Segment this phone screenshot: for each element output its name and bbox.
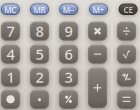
staticText: 1 <box>6 67 14 87</box>
staticText: 9 <box>64 21 72 41</box>
button[interactable]: 6 <box>59 45 78 64</box>
button[interactable]: Decimal point <box>30 90 49 109</box>
staticText: 2 <box>35 67 43 87</box>
button[interactable]: Equals <box>117 90 136 109</box>
button[interactable]: 5 <box>30 45 49 64</box>
staticText: 6 <box>64 44 72 64</box>
button[interactable]: 4 <box>1 45 20 64</box>
staticText: MC <box>4 5 16 15</box>
staticText: CE <box>124 5 133 15</box>
button[interactable]: CE <box>119 4 138 15</box>
button[interactable]: Plus <box>88 68 107 108</box>
button[interactable]: M+ <box>89 4 108 15</box>
button[interactable]: MR <box>30 4 49 15</box>
button[interactable]: 3 <box>59 68 78 87</box>
button[interactable]: Divide <box>117 22 136 41</box>
staticText: M− <box>63 5 75 15</box>
button[interactable]: 1 <box>1 68 20 87</box>
button[interactable]: M− <box>59 4 78 15</box>
staticText: 7 <box>6 21 14 41</box>
button[interactable]: Multiply <box>88 22 107 41</box>
staticText: M+ <box>92 5 104 15</box>
button[interactable]: 7 <box>1 22 20 41</box>
staticText: 4 <box>6 44 14 64</box>
staticText: 8 <box>35 21 43 41</box>
button[interactable]: 0 <box>1 90 20 109</box>
button[interactable]: 8 <box>30 22 49 41</box>
button[interactable]: Plus or minus <box>117 68 136 87</box>
staticText: MR <box>33 5 45 15</box>
staticText: 3 <box>64 67 72 87</box>
button[interactable]: MC <box>1 4 20 15</box>
button[interactable]: 2 <box>30 68 49 87</box>
button[interactable]: Square root <box>117 45 136 64</box>
button[interactable]: Percent <box>59 90 78 109</box>
button[interactable]: Minus <box>88 45 107 64</box>
staticText: 5 <box>35 44 43 64</box>
button[interactable]: 9 <box>59 22 78 41</box>
